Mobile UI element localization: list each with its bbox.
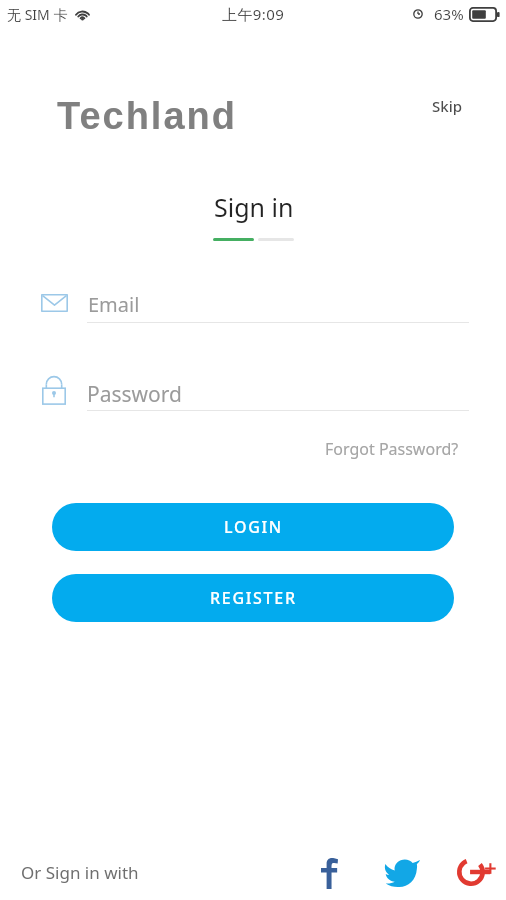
button[interactable]: REGISTER (52, 574, 454, 622)
button[interactable]: Sign in with Google (456, 854, 496, 890)
staticText: Skip (432, 96, 462, 116)
staticText: Password (87, 380, 182, 409)
staticText: Forgot Password? (325, 438, 459, 460)
button[interactable]: Sign in with Twitter (384, 858, 420, 887)
staticText: Sign in (214, 190, 294, 224)
staticText: 63% (434, 4, 464, 24)
button[interactable]: LOGIN (52, 503, 454, 551)
button[interactable]: Skip (424, 88, 470, 124)
staticText: 上午9:09 (222, 4, 285, 24)
staticText: Email (88, 291, 140, 318)
staticText: Or Sign in with (21, 861, 139, 884)
staticText: LOGIN (224, 516, 283, 538)
staticText: 无 SIM 卡 (7, 5, 68, 24)
button[interactable]: Sign in (0, 190, 506, 241)
staticText: REGISTER (210, 587, 297, 609)
button[interactable]: Sign in with Facebook (311, 855, 347, 891)
button[interactable]: Forgot Password? (317, 430, 467, 468)
staticText: Techland (57, 95, 237, 137)
